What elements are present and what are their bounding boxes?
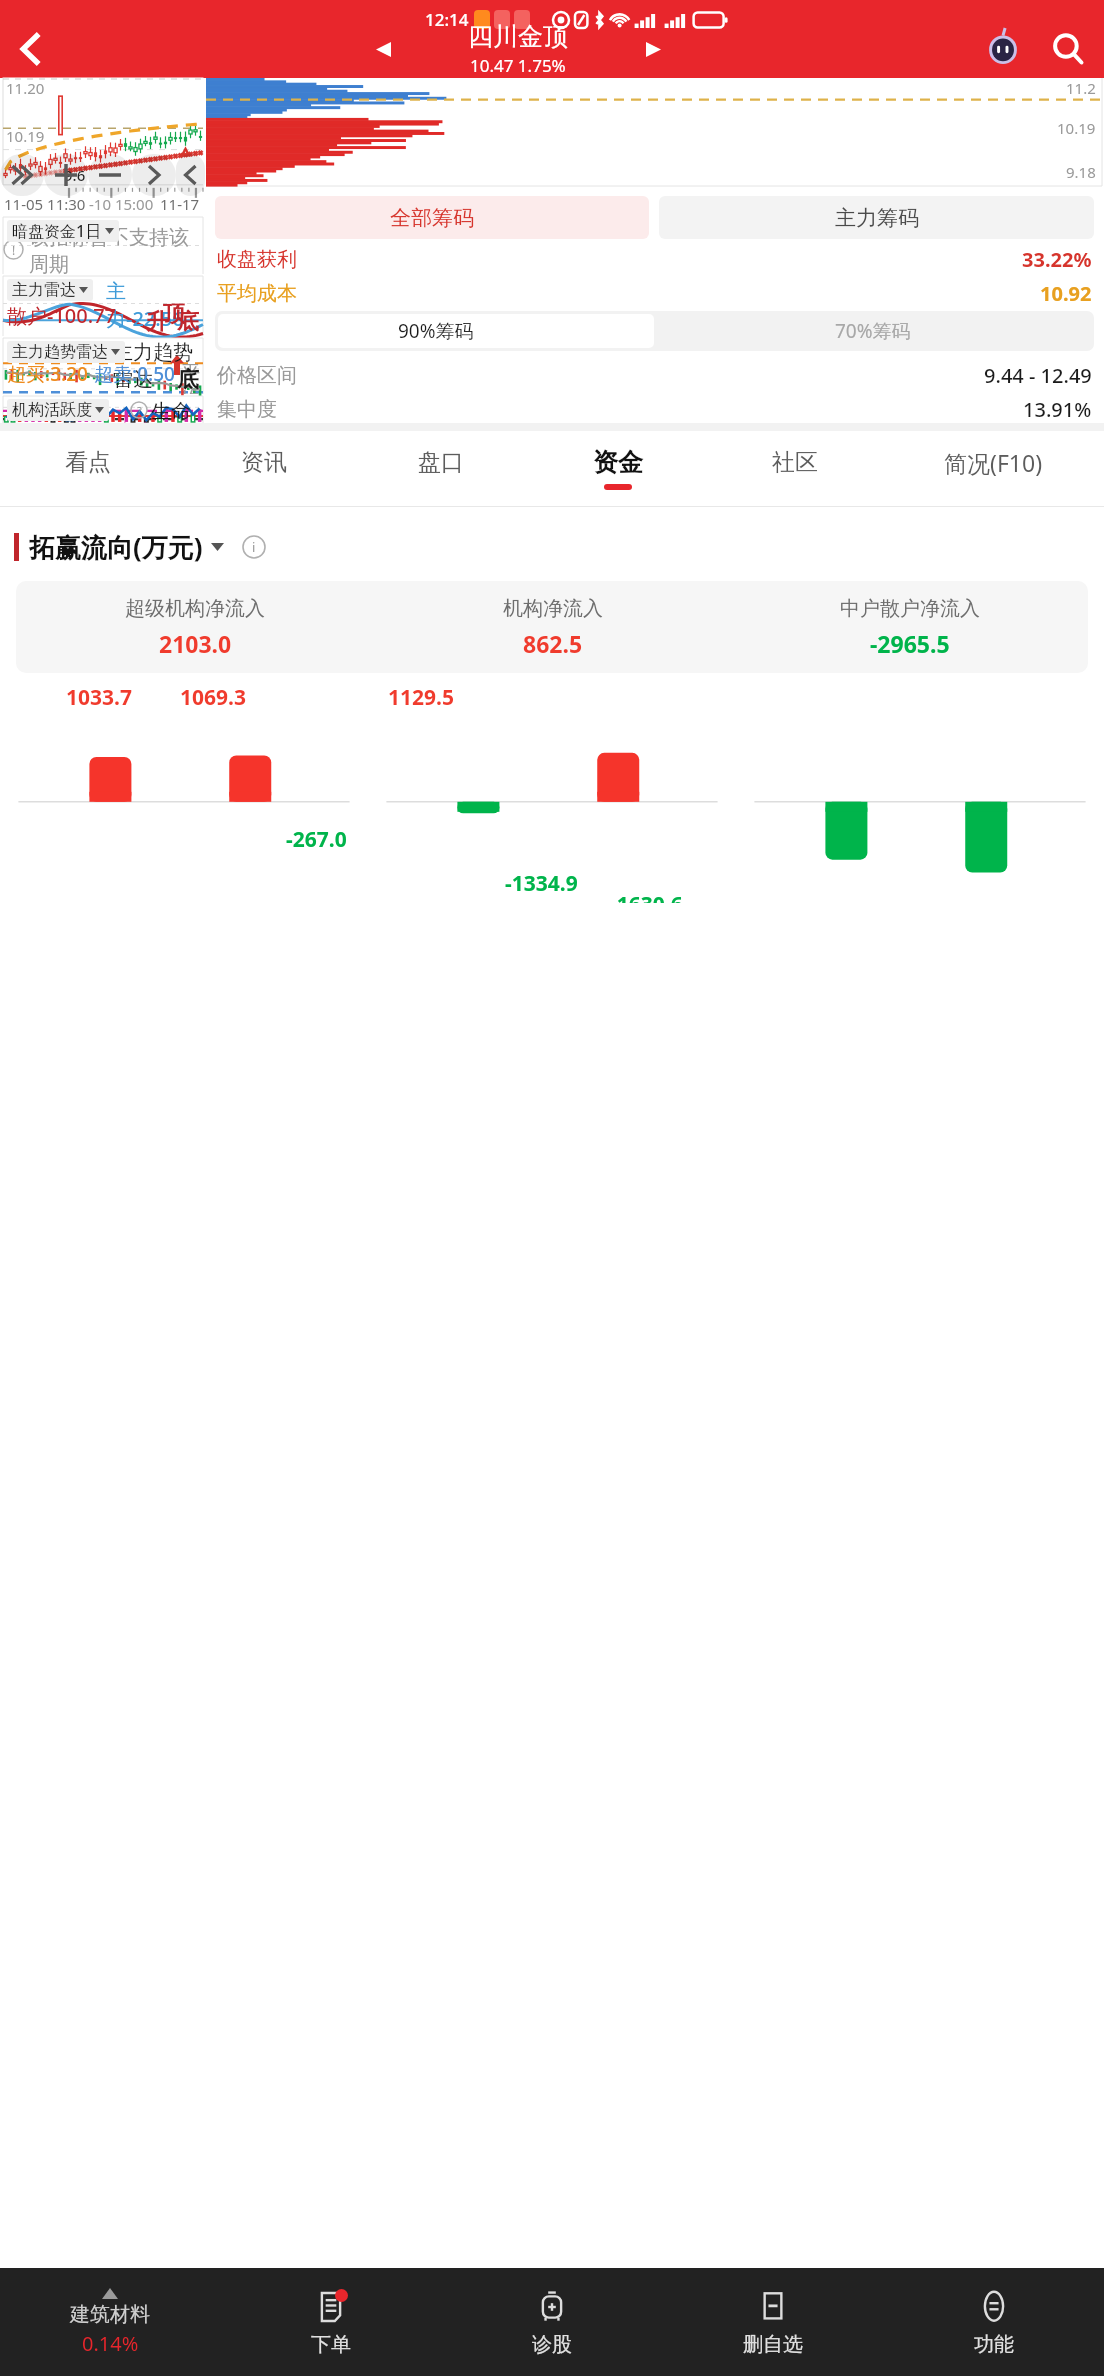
button[interactable]: 暗盘资金1日 [12, 220, 114, 242]
button[interactable]: 主力雷达 [12, 279, 88, 301]
staticText: 13.91% [1023, 396, 1092, 423]
staticText: 功能 [974, 2332, 1014, 2357]
staticText: 9.44 - 12.49 [984, 362, 1092, 389]
staticText: 主力-22.56 [106, 279, 203, 332]
staticText: 强势线:3.00 [7, 420, 113, 423]
button[interactable]: ? [130, 401, 148, 419]
staticText: -1630.6 [610, 890, 683, 903]
staticText: 70%筹码 [835, 318, 911, 344]
button[interactable]: 看点 [0, 431, 176, 506]
staticText: 顶 [163, 300, 185, 328]
staticText: 资讯 [241, 448, 287, 477]
button[interactable]: Next [176, 154, 205, 196]
button[interactable]: 资讯 [176, 431, 352, 506]
button[interactable]: 机构活跃度 [12, 399, 104, 421]
staticText: 社区 [772, 448, 818, 477]
button[interactable]: i [242, 535, 266, 559]
button[interactable]: 70%筹码 [654, 314, 1091, 348]
button[interactable]: 机构净流入 [374, 596, 731, 659]
staticText: 11.20 [6, 78, 45, 98]
staticText: 底 [177, 308, 199, 336]
staticText: 散户-100.77 [7, 302, 117, 329]
staticText: 资金 [593, 447, 643, 478]
staticText: 暗盘资金1日 [12, 220, 102, 242]
staticText: 9.18 [1066, 162, 1096, 182]
staticText: 建筑材料 [70, 2302, 150, 2327]
button[interactable]: 诊股 [441, 2268, 662, 2376]
staticText: 收盘获利 [217, 247, 297, 272]
button[interactable]: 全部筹码 [215, 196, 649, 239]
staticText: 中户散户净流入 [840, 596, 980, 621]
staticText: 看点 [65, 448, 111, 477]
staticText: 该指标暂不支持该周期 [29, 225, 203, 274]
staticText: 10.47 1.75% [470, 54, 566, 77]
button[interactable]: 拓赢流向(万元) [14, 529, 1104, 565]
staticText: 底 [177, 366, 199, 394]
button[interactable]: 下单 [220, 2268, 441, 2376]
staticText: 2103.0 [159, 628, 232, 659]
staticText: 平均线:0.23 [181, 361, 203, 394]
staticText: 11.2 [1066, 78, 1096, 98]
button[interactable]: 主力筹码 [659, 196, 1094, 239]
button[interactable]: 功能 [883, 2268, 1104, 2376]
button[interactable]: AI assistant [974, 20, 1032, 78]
button[interactable]: 主力趋势雷达 [12, 341, 120, 363]
staticText: 1069.3 [180, 683, 246, 712]
staticText: 1129.5 [388, 683, 454, 712]
staticText: 升 [146, 308, 168, 336]
staticText: 机构活跃度 [12, 400, 92, 420]
button[interactable]: Previous [132, 154, 176, 196]
staticText: 生命线:1.56 [151, 399, 203, 423]
button[interactable]: 简况(F10) [883, 431, 1104, 506]
staticText: i [252, 538, 256, 556]
button[interactable]: Next stock [633, 29, 673, 69]
staticText: -267.0 [286, 825, 347, 854]
button[interactable]: 超级机构净流入 [16, 596, 374, 659]
button[interactable]: 社区 [706, 431, 883, 506]
staticText: 超买:3.20 [7, 361, 88, 387]
button[interactable]: 盘口 [352, 431, 529, 506]
staticText: 11-05 11:30 [4, 194, 86, 214]
staticText: 9.6 [64, 165, 86, 185]
button[interactable]: 中户散户净流入 [731, 596, 1088, 659]
button[interactable]: Back [0, 20, 62, 78]
staticText: ? [137, 403, 142, 418]
button[interactable]: 四川金顶 [403, 21, 633, 77]
staticText: ! [12, 242, 16, 258]
staticText: 诊股 [532, 2332, 572, 2357]
staticText: 11-17 11:30 [160, 194, 205, 215]
staticText: 四川金顶 [468, 21, 568, 52]
staticText: -2965.5 [870, 628, 950, 659]
staticText: 主力雷达 [12, 280, 76, 300]
staticText: 主力趋势雷达 [12, 342, 108, 362]
staticText: 机构净流入 [503, 596, 603, 621]
button[interactable]: Zoom out [88, 154, 132, 196]
button[interactable]: 删自选 [662, 2268, 883, 2376]
staticText: 拓赢流向(万元) [29, 529, 203, 565]
staticText: 1033.7 [66, 683, 132, 712]
staticText: 盘口 [418, 448, 464, 477]
staticText: 大牛线:6.00 [115, 420, 203, 423]
button[interactable]: Previous stock [363, 29, 403, 69]
button[interactable]: Search [1032, 20, 1104, 78]
staticText: 10.19 [1057, 118, 1096, 138]
staticText: 超级机构净流入 [125, 596, 265, 621]
button[interactable]: 资金 [529, 431, 706, 506]
staticText: 下单 [311, 2332, 351, 2357]
staticText: 90%筹码 [398, 318, 474, 344]
staticText: 平均成本 [217, 281, 297, 306]
staticText: 33.22% [1022, 246, 1092, 273]
staticText: 0.14% [82, 2330, 139, 2357]
button[interactable]: Zoom in [44, 154, 88, 196]
staticText: 简况(F10) [944, 447, 1043, 478]
staticText: 删自选 [743, 2332, 803, 2357]
staticText: 12:14 [425, 8, 469, 31]
button[interactable]: 90%筹码 [218, 314, 654, 348]
staticText: 10.19 [6, 126, 45, 146]
button[interactable]: Scroll left [0, 154, 44, 196]
button[interactable]: 建筑材料 [0, 2268, 220, 2376]
staticText: -10 15:00 [89, 194, 154, 214]
staticText: 10.92 [1040, 280, 1092, 307]
staticText: 价格区间 [217, 363, 297, 388]
staticText: -1334.9 [505, 869, 578, 898]
